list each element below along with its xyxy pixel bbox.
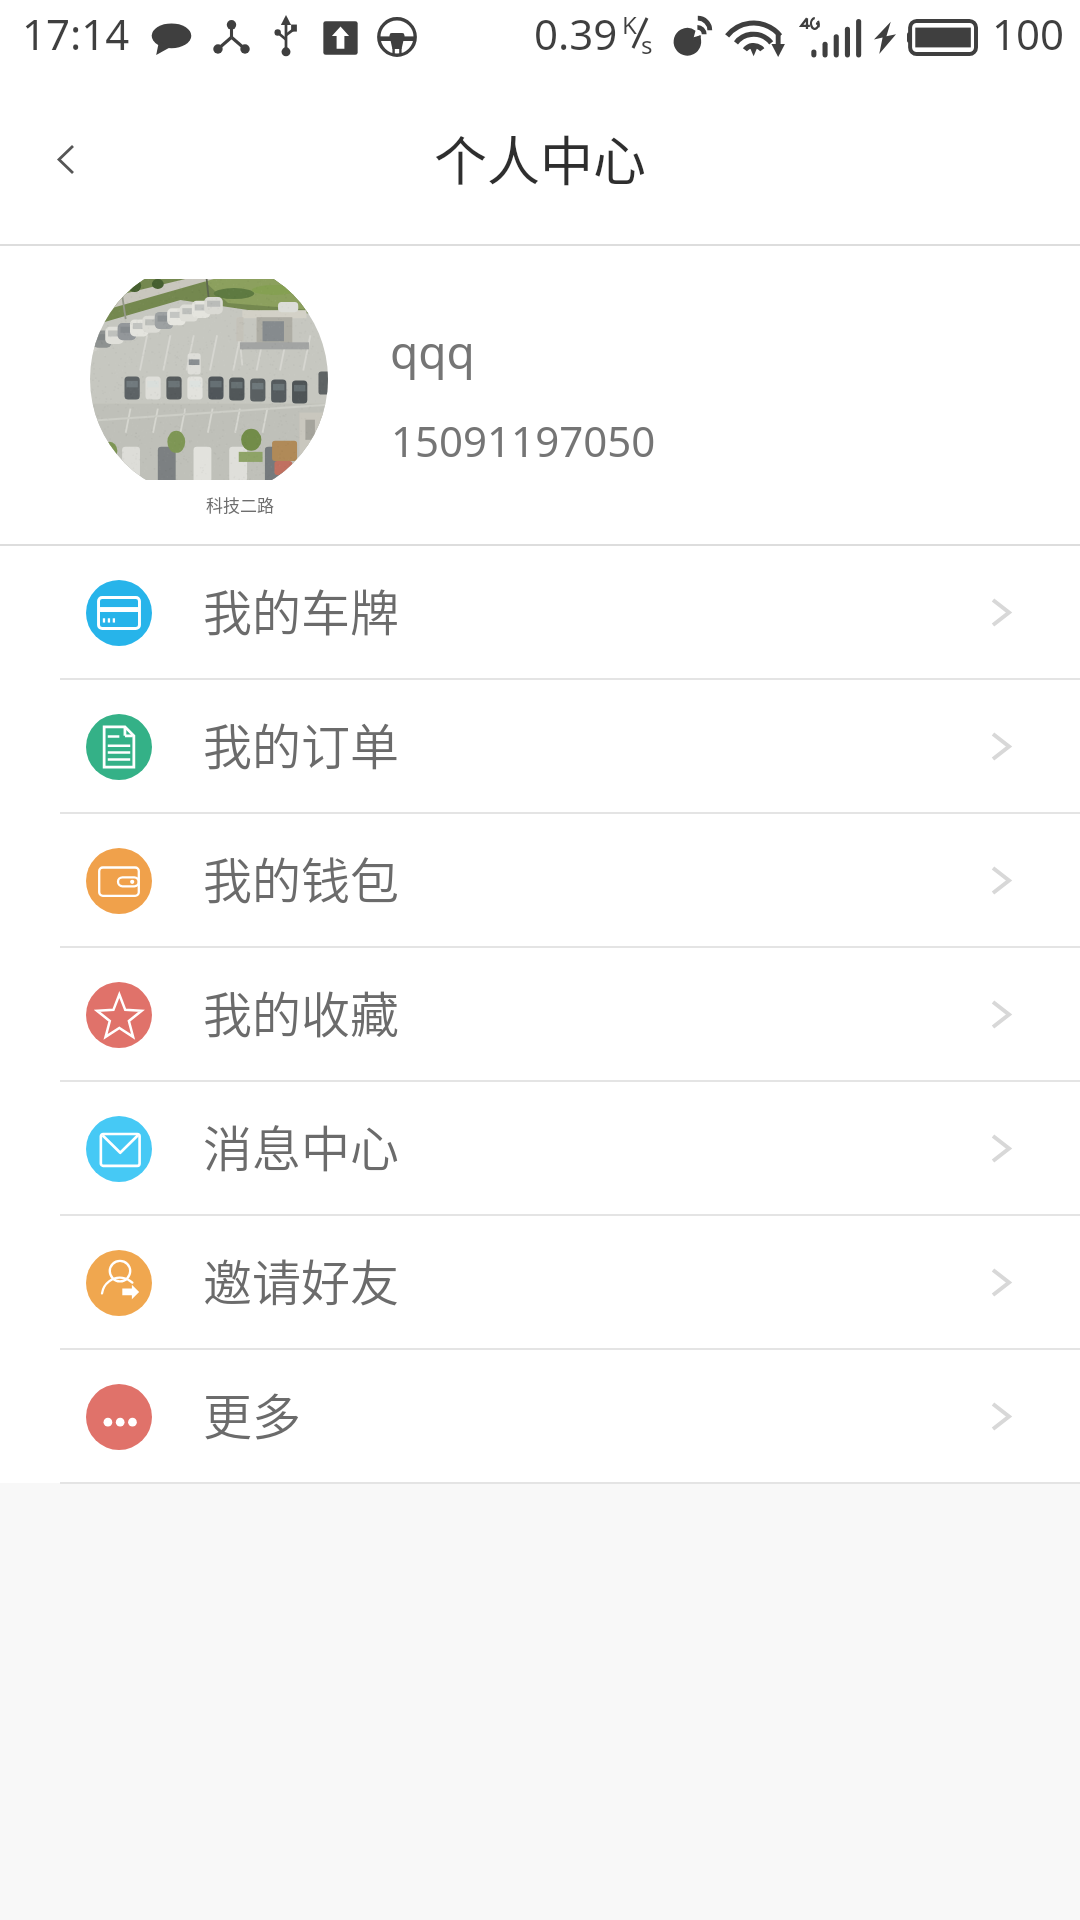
button[interactable]: 邀请好友 bbox=[0, 1216, 1080, 1350]
staticText: qqq bbox=[390, 320, 475, 383]
button[interactable]: 我的钱包 bbox=[0, 814, 1080, 948]
staticText: 100 bbox=[992, 5, 1065, 62]
staticText: 消息中心 bbox=[203, 1110, 400, 1181]
staticText: 我的订单 bbox=[203, 708, 400, 779]
staticText: 0.39 bbox=[534, 5, 618, 62]
staticText: 17:14 bbox=[22, 5, 130, 62]
staticText: K bbox=[622, 8, 637, 41]
button[interactable]: 消息中心 bbox=[0, 1082, 1080, 1216]
button[interactable]: 我的收藏 bbox=[0, 948, 1080, 1082]
staticText: 我的车牌 bbox=[203, 574, 400, 645]
staticText: s bbox=[641, 28, 653, 61]
button[interactable]: 更多 bbox=[0, 1350, 1080, 1484]
button[interactable]: 科技二路 bbox=[0, 246, 1080, 544]
staticText: 更多 bbox=[203, 1378, 302, 1449]
button[interactable]: Back bbox=[10, 77, 122, 241]
button[interactable]: 我的车牌 bbox=[0, 546, 1080, 680]
button[interactable]: 我的订单 bbox=[0, 680, 1080, 814]
staticText: 15091197050 bbox=[391, 412, 656, 469]
staticText: 我的收藏 bbox=[203, 976, 400, 1047]
staticText: 我的钱包 bbox=[203, 842, 400, 913]
staticText: 邀请好友 bbox=[203, 1244, 400, 1315]
staticText: 个人中心 bbox=[0, 120, 1080, 197]
staticText: 科技二路 bbox=[206, 492, 274, 517]
